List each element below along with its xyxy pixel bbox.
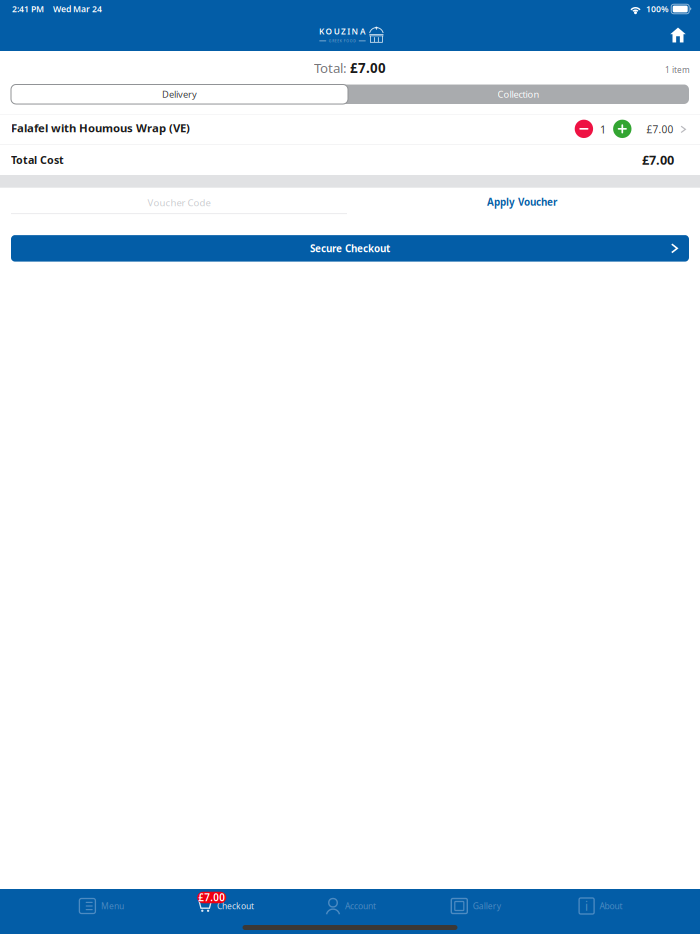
staticText: Collection	[497, 88, 539, 101]
staticText: About	[600, 900, 623, 912]
staticText: Wed Mar 24	[53, 3, 102, 15]
staticText: 100%	[646, 3, 669, 15]
button[interactable]: Falafel with Houmous Wrap (VE)	[0, 115, 700, 144]
button[interactable]: Secure Checkout	[0, 235, 700, 262]
staticText: 1	[600, 122, 606, 137]
button[interactable]: Delivery	[11, 84, 348, 104]
button[interactable]: Apply Voucher	[347, 188, 689, 214]
button[interactable]: Gallery	[413, 889, 538, 923]
staticText: Menu	[101, 900, 124, 912]
staticText: Total:	[314, 59, 350, 77]
staticText: Voucher Code	[147, 196, 210, 209]
button[interactable]: i	[538, 889, 663, 923]
staticText: Gallery	[473, 900, 501, 912]
staticText: Checkout	[217, 900, 254, 912]
staticText: £7.00	[646, 122, 673, 136]
staticText: Total Cost	[11, 153, 64, 167]
button[interactable]: Menu	[39, 889, 164, 923]
staticText: KOUZINA	[319, 26, 366, 37]
staticText: GREEK FOOD	[329, 38, 356, 43]
staticText: Account	[345, 900, 376, 912]
button[interactable]: Home	[660, 19, 696, 49]
button[interactable]: Account	[289, 889, 413, 923]
staticText: Apply Voucher	[487, 195, 557, 209]
staticText: Delivery	[162, 88, 197, 101]
staticText: i	[585, 898, 588, 914]
staticText: £7.00	[350, 59, 386, 77]
staticText: 2:41 PM	[12, 3, 44, 15]
staticText: Falafel with Houmous Wrap (VE)	[11, 120, 190, 135]
button[interactable]: Collection	[348, 84, 689, 104]
staticText: Secure Checkout	[310, 242, 390, 255]
staticText: £7.00	[198, 891, 225, 904]
staticText: £7.00	[642, 151, 674, 168]
staticText: 1 item	[665, 64, 690, 75]
button[interactable]: Checkout	[164, 889, 289, 923]
